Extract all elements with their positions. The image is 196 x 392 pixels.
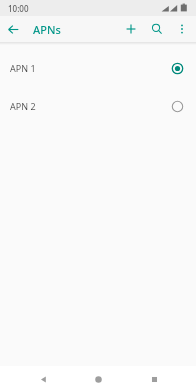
button[interactable]: Home <box>85 366 111 392</box>
staticText: APNs <box>33 22 61 37</box>
button[interactable]: Search <box>144 16 170 42</box>
staticText: APN 2 <box>10 100 36 112</box>
button[interactable]: APN 2 <box>0 87 196 125</box>
button[interactable]: Back <box>30 366 56 392</box>
button[interactable]: Back <box>0 16 26 42</box>
button[interactable]: Add <box>118 16 144 42</box>
staticText: APN 1 <box>10 62 36 74</box>
button[interactable]: APN 1 <box>0 49 196 87</box>
staticText: 10:00 <box>8 3 29 14</box>
button[interactable]: More options <box>170 17 194 41</box>
button[interactable]: Recent apps <box>141 366 167 392</box>
